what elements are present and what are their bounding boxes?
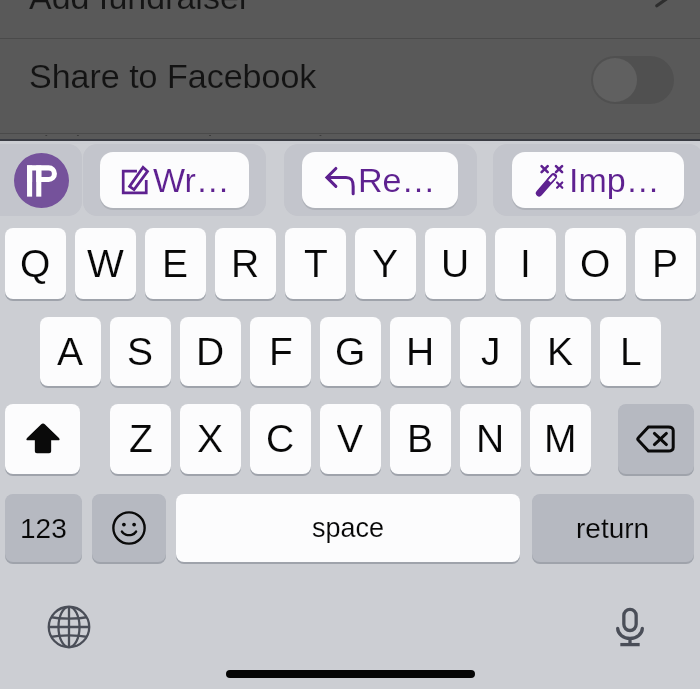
button[interactable]: H [390, 317, 451, 386]
button[interactable] [591, 56, 674, 104]
staticText: J [481, 330, 501, 374]
button[interactable]: N [460, 404, 521, 474]
button[interactable]: Dictate [605, 602, 655, 652]
staticText: C [266, 417, 295, 461]
staticText: Add fundraiser [29, 0, 251, 16]
staticText: Imp… [569, 161, 660, 199]
button[interactable]: Account [14, 153, 69, 208]
button[interactable]: space [176, 494, 520, 562]
staticText: T [304, 242, 328, 286]
staticText: I [520, 242, 531, 286]
button[interactable]: D [180, 317, 241, 386]
button[interactable]: F [250, 317, 311, 386]
button[interactable]: R [215, 228, 276, 299]
staticText: 123 [20, 513, 67, 544]
staticText: R [231, 242, 260, 286]
button[interactable]: C [250, 404, 311, 474]
button[interactable]: Wr… [100, 152, 249, 208]
button[interactable]: A [40, 317, 101, 386]
button[interactable]: Re… [302, 152, 458, 208]
staticText: G [335, 330, 366, 374]
staticText: E [162, 242, 189, 286]
button[interactable]: K [530, 317, 591, 386]
button[interactable]: X [180, 404, 241, 474]
button[interactable]: Y [355, 228, 416, 299]
staticText: F [269, 330, 293, 374]
button[interactable]: Backspace [618, 404, 694, 474]
button[interactable]: Z [110, 404, 171, 474]
staticText: P [652, 242, 679, 286]
staticText: L [620, 330, 642, 374]
button[interactable]: L [600, 317, 661, 386]
button[interactable]: 123 [5, 494, 82, 562]
button[interactable]: E [145, 228, 206, 299]
staticText: K [547, 330, 574, 374]
button[interactable]: B [390, 404, 451, 474]
staticText: H [406, 330, 435, 374]
staticText: X [197, 417, 224, 461]
button[interactable]: M [530, 404, 591, 474]
button[interactable]: G [320, 317, 381, 386]
button[interactable]: Q [5, 228, 66, 299]
staticText: U [441, 242, 470, 286]
button[interactable]: P [635, 228, 696, 299]
button[interactable]: O [565, 228, 626, 299]
staticText: N [476, 417, 505, 461]
button[interactable]: return [532, 494, 694, 562]
staticText: Y [372, 242, 399, 286]
staticText: Z [129, 417, 153, 461]
staticText: W [87, 242, 124, 286]
staticText: space [312, 513, 385, 543]
staticText: Q [20, 242, 51, 286]
button[interactable]: Imp… [512, 152, 684, 208]
staticText: O [580, 242, 611, 286]
button[interactable]: V [320, 404, 381, 474]
button[interactable]: I [495, 228, 556, 299]
staticText: return [576, 513, 650, 544]
staticText: M [544, 417, 577, 461]
button[interactable]: Emoji [92, 494, 166, 562]
button[interactable]: Shift [5, 404, 80, 474]
button[interactable]: J [460, 317, 521, 386]
staticText: Re… [358, 161, 436, 199]
staticText: S [127, 330, 154, 374]
button[interactable]: W [75, 228, 136, 299]
button[interactable]: S [110, 317, 171, 386]
staticText: D [196, 330, 225, 374]
staticText: Wr… [153, 161, 230, 199]
button[interactable]: T [285, 228, 346, 299]
staticText: B [407, 417, 434, 461]
staticText: V [337, 417, 364, 461]
staticText: Share to Facebook [29, 57, 317, 95]
button[interactable]: Switch keyboard [44, 602, 94, 652]
button[interactable]: U [425, 228, 486, 299]
staticText: A [57, 330, 84, 374]
